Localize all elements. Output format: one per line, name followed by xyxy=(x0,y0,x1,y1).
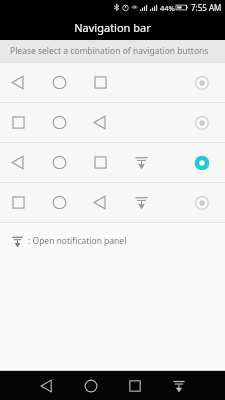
button[interactable] xyxy=(0,143,225,182)
staticText: 7:55 AM xyxy=(191,2,222,13)
button[interactable] xyxy=(0,103,225,142)
button[interactable]: Open notification panel xyxy=(157,371,201,400)
button[interactable] xyxy=(0,63,225,102)
staticText: : Open notification panel xyxy=(28,235,127,247)
button[interactable] xyxy=(0,183,225,222)
staticText: Navigation bar xyxy=(74,20,151,35)
staticText: 44% xyxy=(160,3,175,13)
button[interactable]: Back xyxy=(25,371,69,400)
button[interactable]: Home xyxy=(69,371,113,400)
staticText: Please select a combination of navigatio… xyxy=(10,45,209,57)
button[interactable]: Recents xyxy=(113,371,157,400)
